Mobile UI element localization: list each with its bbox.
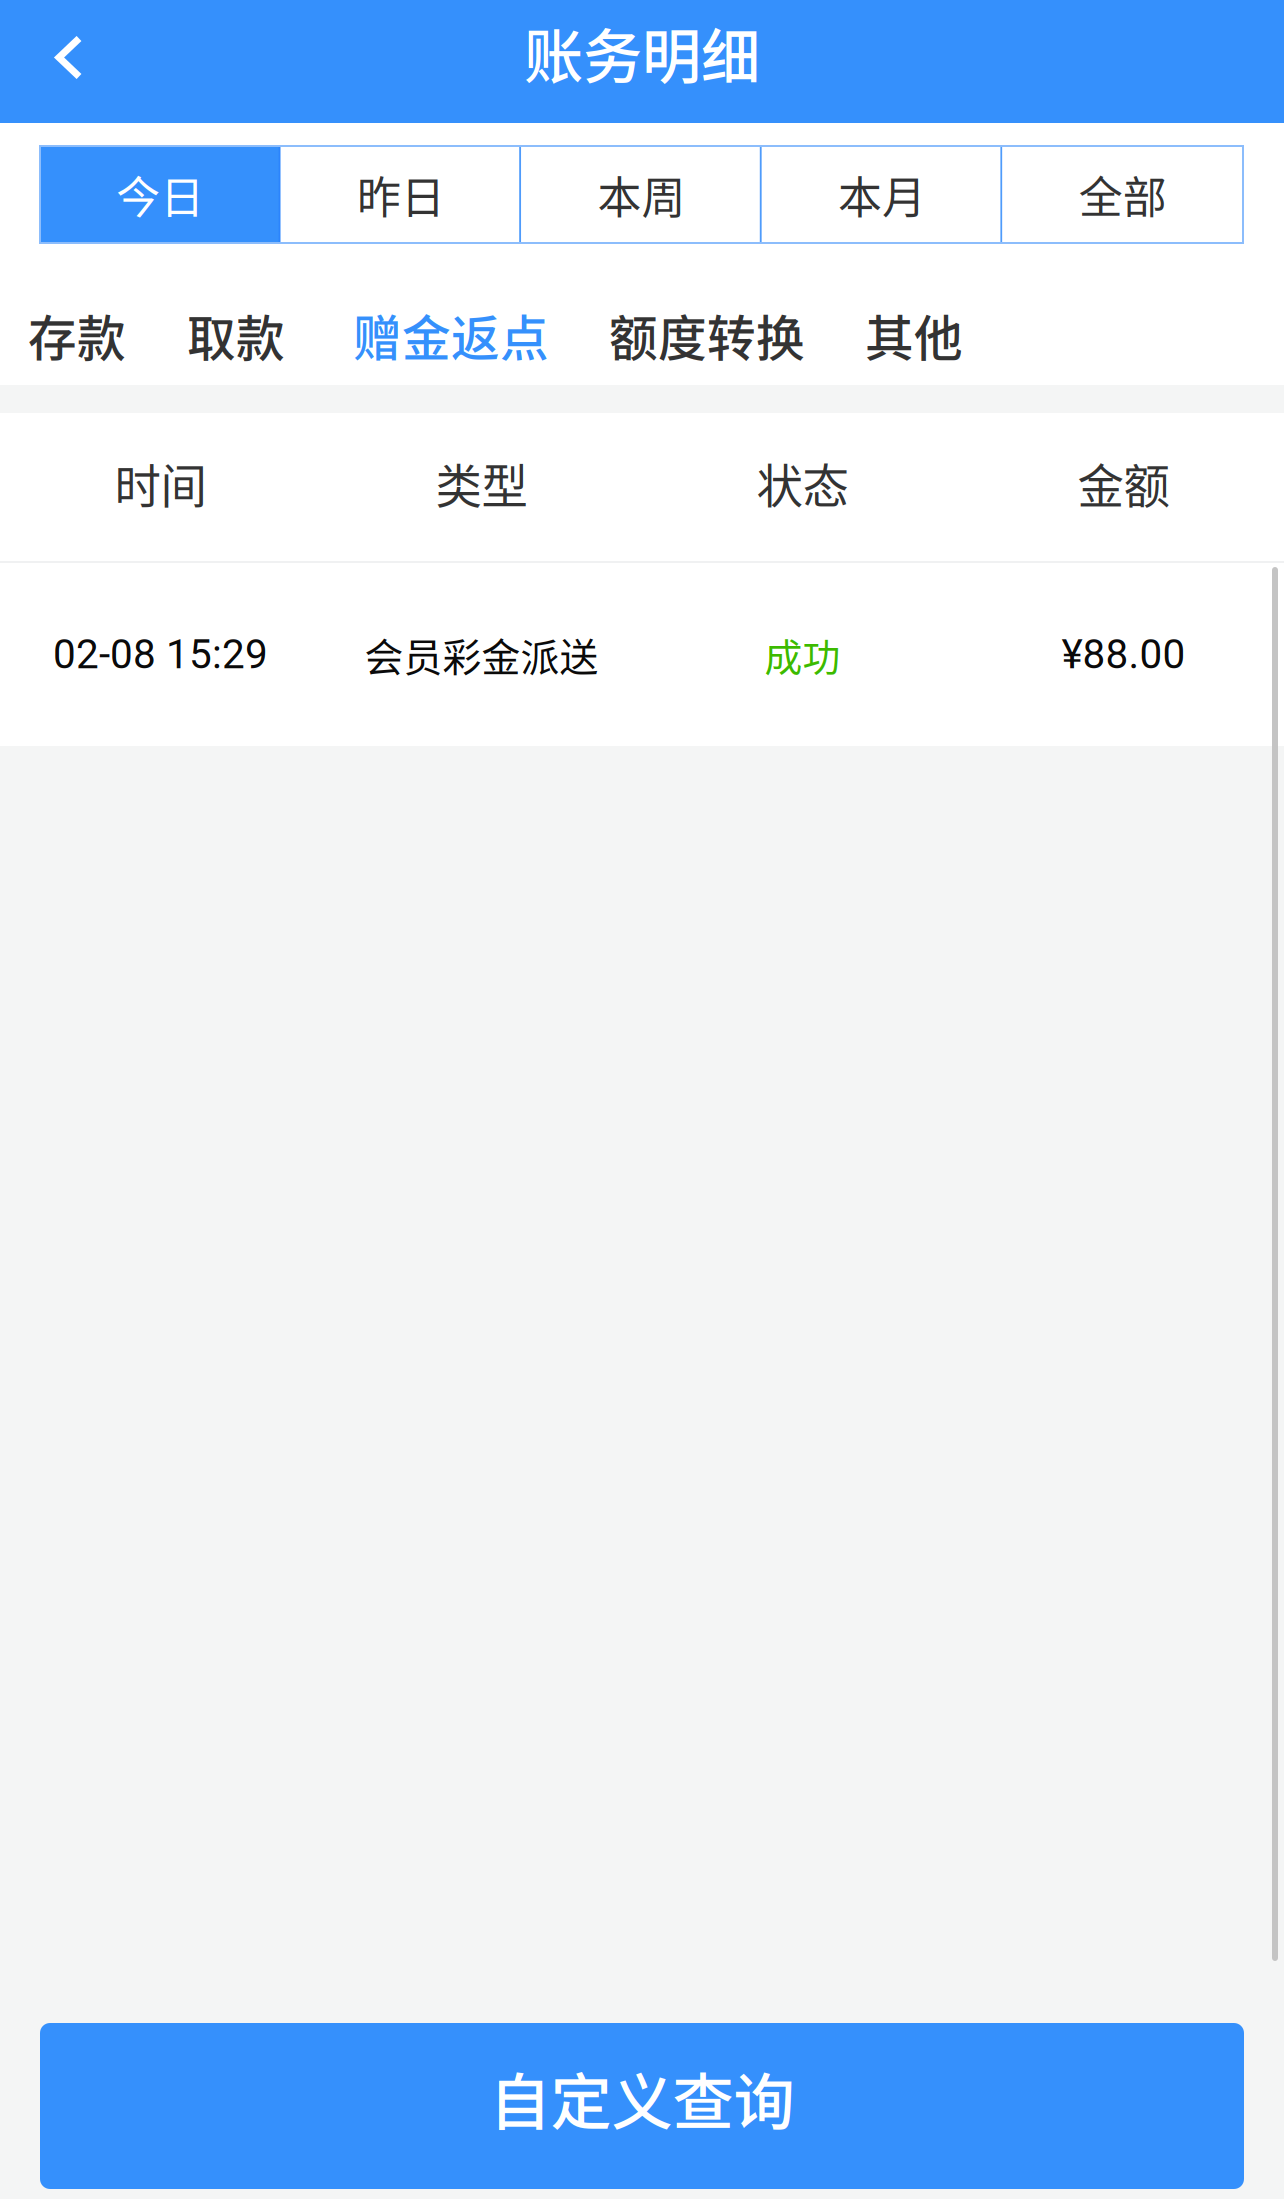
button[interactable]: 存款 <box>14 290 140 380</box>
staticText: 02-08 15:29 <box>53 631 268 678</box>
button[interactable]: 昨日 <box>281 146 521 243</box>
button[interactable]: 全部 <box>1002 146 1243 243</box>
button[interactable]: 其他 <box>851 290 977 380</box>
staticText: ¥88.00 <box>1061 631 1185 678</box>
staticText: 自定义查询 <box>489 2054 794 2142</box>
button[interactable]: 自定义查询 <box>40 2023 1244 2189</box>
button[interactable]: 额度转换 <box>595 290 819 380</box>
staticText: 其他 <box>865 300 963 370</box>
button[interactable]: 今日 <box>40 146 281 243</box>
staticText: 今日 <box>116 163 204 226</box>
button[interactable]: 本月 <box>762 146 1002 243</box>
staticText: 存款 <box>28 300 126 370</box>
staticText: 时间 <box>114 449 206 517</box>
button[interactable]: 赠金返点 <box>339 290 563 380</box>
staticText: 额度转换 <box>609 300 805 370</box>
staticText: 成功 <box>764 627 840 682</box>
staticText: 类型 <box>435 449 527 517</box>
staticText: 昨日 <box>357 163 445 226</box>
staticText: 金额 <box>1077 449 1169 517</box>
button[interactable]: 本周 <box>521 146 762 243</box>
staticText: 本周 <box>597 163 685 226</box>
staticText: 账务明细 <box>524 10 760 95</box>
button[interactable]: 取款 <box>173 290 299 380</box>
button[interactable]: Back <box>0 0 129 123</box>
staticText: 赠金返点 <box>353 300 549 370</box>
staticText: 本月 <box>838 163 926 226</box>
staticText: 状态 <box>756 449 848 517</box>
staticText: 取款 <box>187 300 285 370</box>
staticText: 全部 <box>1079 163 1167 226</box>
staticText: 会员彩金派送 <box>364 626 598 683</box>
